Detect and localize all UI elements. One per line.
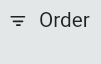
button[interactable]: Sort order bbox=[0, 0, 101, 64]
other: Sort order bbox=[0, 0, 101, 64]
staticText: Order bbox=[39, 8, 90, 32]
